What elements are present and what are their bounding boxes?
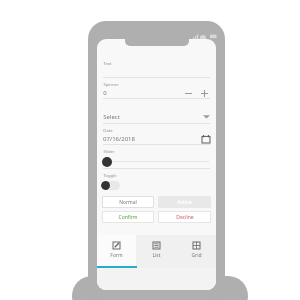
button[interactable]: Active <box>159 197 210 207</box>
staticText: Confirm <box>118 214 138 221</box>
staticText: Form <box>110 252 123 259</box>
other: Open dropdown <box>203 114 210 119</box>
button[interactable]: Text <box>97 57 216 78</box>
button[interactable]: Increase <box>199 88 210 98</box>
staticText: Decline <box>176 214 194 221</box>
button[interactable]: Select <box>97 110 216 124</box>
staticText: Select <box>103 113 120 121</box>
staticText: Date <box>103 128 113 134</box>
button[interactable] <box>101 181 120 190</box>
button[interactable]: Decline <box>159 212 210 222</box>
staticText: Text <box>103 61 112 67</box>
button[interactable]: List <box>136 235 176 266</box>
staticText: Slider <box>103 149 115 155</box>
staticText: Normal <box>119 199 137 206</box>
staticText: 0 <box>103 89 107 97</box>
staticText: 07/16/2018 <box>103 135 135 143</box>
button[interactable]: Form <box>97 235 136 266</box>
staticText: Spinner <box>103 82 119 88</box>
button[interactable]: Confirm <box>103 212 153 222</box>
button[interactable]: Normal <box>103 197 153 207</box>
staticText: Toggle <box>103 173 117 179</box>
button[interactable]: Grid <box>176 235 216 266</box>
button[interactable]: Decrease <box>183 88 194 98</box>
staticText: Grid <box>191 252 202 259</box>
button[interactable]: Date <box>97 124 216 145</box>
button[interactable] <box>102 157 112 167</box>
staticText: Active <box>177 199 192 206</box>
staticText: List <box>152 252 161 259</box>
button[interactable]: Spinner <box>97 78 216 99</box>
other: Pick date <box>202 135 210 143</box>
